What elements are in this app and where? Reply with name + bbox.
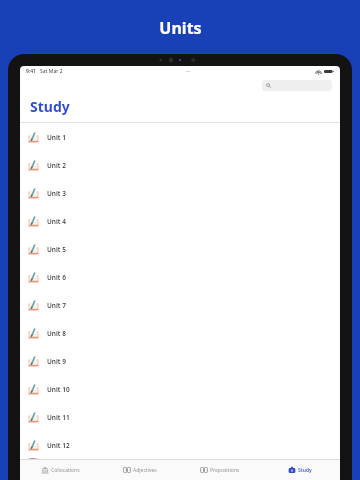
staticText: Unit 2 bbox=[47, 161, 66, 170]
button[interactable]: Study bbox=[260, 460, 340, 480]
other: Study bbox=[288, 466, 296, 474]
staticText: Unit 5 bbox=[47, 245, 66, 254]
staticText: Sat Mar 2 bbox=[40, 68, 63, 75]
staticText: Unit 11 bbox=[47, 413, 70, 422]
button[interactable]: Unit 4 bbox=[20, 207, 340, 235]
staticText: Adjectives bbox=[133, 467, 157, 474]
staticText: 9:41 bbox=[26, 68, 36, 75]
button[interactable]: Unit 2 bbox=[20, 151, 340, 179]
staticText: Unit 3 bbox=[47, 189, 66, 198]
staticText: Study bbox=[30, 97, 70, 116]
other: Book bbox=[200, 466, 208, 474]
other: Book bbox=[123, 466, 131, 474]
staticText: Units bbox=[159, 17, 202, 39]
button[interactable]: Unit 12 bbox=[20, 431, 340, 459]
staticText: Study bbox=[298, 467, 312, 474]
button[interactable]: Unit 3 bbox=[20, 179, 340, 207]
staticText: Unit 4 bbox=[47, 217, 66, 226]
staticText: Unit 7 bbox=[47, 301, 66, 310]
button[interactable]: Unit 11 bbox=[20, 403, 340, 431]
staticText: Collocations bbox=[51, 467, 80, 474]
staticText: Unit 9 bbox=[47, 357, 66, 366]
button[interactable]: Unit 9 bbox=[20, 347, 340, 375]
button[interactable]: Unit 5 bbox=[20, 235, 340, 263]
staticText: Unit 1 bbox=[47, 133, 66, 142]
button[interactable]: Unit 6 bbox=[20, 263, 340, 291]
button[interactable] bbox=[262, 80, 332, 91]
button[interactable]: Unit 1 bbox=[20, 123, 340, 151]
button[interactable]: Unit 7 bbox=[20, 291, 340, 319]
staticText: Unit 8 bbox=[47, 329, 66, 338]
staticText: Unit 12 bbox=[47, 441, 70, 450]
button[interactable]: Collocations bbox=[20, 460, 100, 480]
button[interactable]: Unit 10 bbox=[20, 375, 340, 403]
button[interactable]: Unit 8 bbox=[20, 319, 340, 347]
staticText: ••• bbox=[186, 69, 191, 74]
staticText: Unit 10 bbox=[47, 385, 70, 394]
staticText: Prepositions bbox=[210, 467, 240, 474]
button[interactable]: Book bbox=[100, 460, 180, 480]
staticText: Unit 6 bbox=[47, 273, 66, 282]
other: Collocations bbox=[41, 466, 49, 474]
button[interactable]: Book bbox=[180, 460, 260, 480]
